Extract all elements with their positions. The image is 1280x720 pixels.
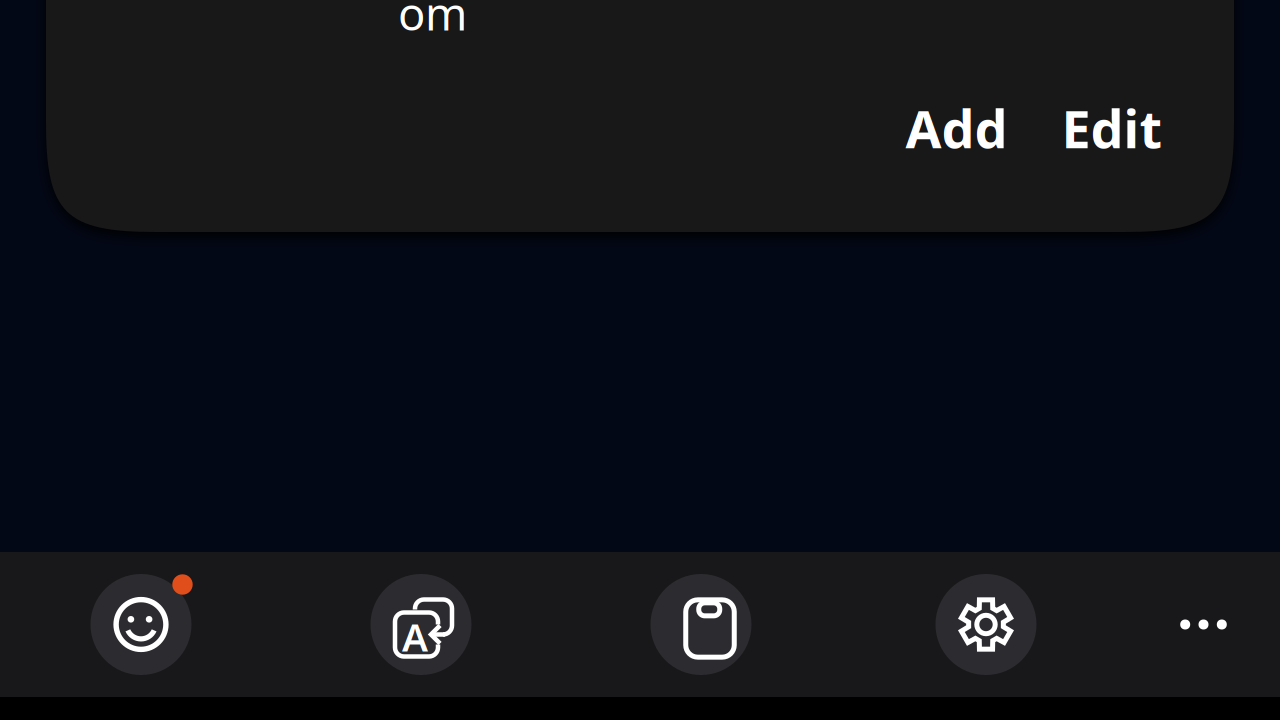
button[interactable]: Edit bbox=[1022, 95, 1202, 161]
button[interactable]: More bbox=[1153, 574, 1254, 675]
staticText: A bbox=[402, 611, 428, 662]
button[interactable]: Add bbox=[866, 95, 1046, 161]
button[interactable]: Clipboard bbox=[650, 574, 751, 675]
button[interactable]: Translate bbox=[370, 574, 471, 675]
button[interactable]: Settings bbox=[935, 574, 1036, 675]
staticText: om bbox=[398, 0, 467, 43]
button[interactable]: Emoji bbox=[90, 574, 191, 675]
staticText: Edit bbox=[1061, 93, 1162, 163]
staticText: Add bbox=[905, 93, 1007, 163]
